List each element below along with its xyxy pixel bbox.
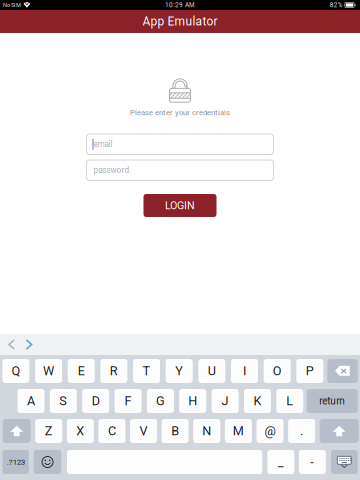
- button[interactable]: .: [288, 419, 315, 443]
- staticText: K: [253, 394, 261, 408]
- button[interactable]: LOGIN: [143, 194, 216, 217]
- staticText: .?123: [7, 457, 25, 467]
- button[interactable]: E: [68, 359, 95, 383]
- staticText: O: [273, 364, 282, 378]
- staticText: P: [306, 364, 314, 378]
- button[interactable]: O: [264, 359, 291, 383]
- button[interactable]: Shift: [320, 419, 359, 443]
- button[interactable]: U: [198, 359, 225, 383]
- staticText: B: [171, 424, 179, 438]
- staticText: T: [142, 364, 150, 378]
- staticText: @: [264, 424, 275, 438]
- button[interactable]: Shift: [3, 419, 31, 443]
- button[interactable]: A: [17, 389, 44, 413]
- staticText: J: [222, 394, 229, 408]
- staticText: I: [243, 364, 246, 378]
- staticText: password: [93, 165, 129, 175]
- button[interactable]: D: [82, 389, 109, 413]
- staticText: H: [188, 394, 197, 408]
- staticText: 10:29 AM: [165, 1, 195, 9]
- staticText: V: [139, 424, 147, 438]
- staticText: F: [125, 394, 132, 408]
- staticText: Y: [175, 364, 183, 378]
- staticText: G: [156, 394, 165, 408]
- staticText: _: [278, 455, 284, 469]
- button[interactable]: Hide keyboard: [331, 450, 358, 474]
- staticText: R: [110, 364, 118, 378]
- button[interactable]: I: [231, 359, 258, 383]
- button[interactable]: Emoji: [34, 450, 61, 474]
- staticText: D: [92, 394, 100, 408]
- button[interactable]: J: [212, 389, 239, 413]
- button[interactable]: T: [133, 359, 160, 383]
- staticText: App Emulator: [142, 14, 217, 29]
- staticText: 82%: [330, 1, 343, 9]
- staticText: LOGIN: [165, 199, 195, 212]
- button[interactable]: password: [86, 160, 273, 180]
- staticText: E: [78, 364, 85, 378]
- staticText: M: [233, 424, 244, 438]
- button[interactable]: _: [267, 450, 294, 474]
- button[interactable]: Previous field: [7, 334, 17, 355]
- staticText: X: [76, 424, 84, 438]
- staticText: -: [310, 455, 314, 469]
- button[interactable]: -: [299, 450, 326, 474]
- button[interactable]: Next field: [24, 334, 34, 355]
- button[interactable]: X: [67, 419, 94, 443]
- button[interactable]: Y: [166, 359, 193, 383]
- button[interactable]: M: [225, 419, 252, 443]
- staticText: email: [93, 139, 112, 149]
- button[interactable]: return: [307, 389, 358, 413]
- button[interactable]: R: [100, 359, 127, 383]
- staticText: S: [59, 394, 67, 408]
- staticText: A: [27, 394, 35, 408]
- button[interactable]: N: [193, 419, 220, 443]
- button[interactable]: V: [130, 419, 157, 443]
- staticText: No SIM: [3, 2, 21, 8]
- button[interactable]: Delete: [327, 359, 358, 383]
- button[interactable]: H: [179, 389, 206, 413]
- staticText: return: [319, 395, 345, 407]
- staticText: Q: [11, 364, 20, 378]
- staticText: N: [202, 424, 211, 438]
- button[interactable]: C: [98, 419, 125, 443]
- button[interactable]: @: [256, 419, 283, 443]
- button[interactable]: L: [276, 389, 303, 413]
- button[interactable]: G: [147, 389, 174, 413]
- button[interactable]: W: [35, 359, 62, 383]
- staticText: Z: [45, 424, 53, 438]
- button[interactable]: B: [162, 419, 189, 443]
- staticText: C: [108, 424, 116, 438]
- staticText: U: [208, 364, 216, 378]
- button[interactable]: Q: [2, 359, 29, 383]
- staticText: L: [286, 394, 293, 408]
- staticText: .: [300, 424, 303, 438]
- button[interactable]: K: [244, 389, 271, 413]
- button[interactable]: S: [50, 389, 77, 413]
- staticText: W: [43, 364, 54, 378]
- staticText: Please enter your credentials: [130, 108, 230, 117]
- button[interactable]: .?123: [2, 450, 29, 474]
- button[interactable]: Z: [35, 419, 62, 443]
- button[interactable]: P: [296, 359, 323, 383]
- button[interactable]: F: [115, 389, 142, 413]
- button[interactable]: email: [86, 134, 273, 154]
